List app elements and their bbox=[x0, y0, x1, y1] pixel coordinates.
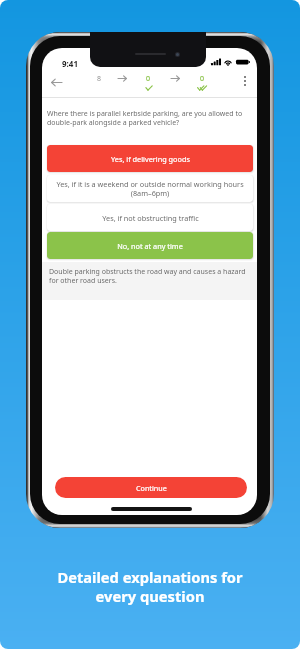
button[interactable]: Yes, if it is a weekend or outside norma… bbox=[47, 175, 253, 202]
staticText: Continue bbox=[136, 483, 167, 493]
staticText: 8 bbox=[97, 74, 102, 83]
button[interactable]: Back bbox=[47, 73, 65, 91]
staticText: Yes, if it is a weekend or outside norma… bbox=[56, 179, 244, 198]
staticText: No, not at any time bbox=[117, 241, 183, 251]
button[interactable]: Yes, if not obstructing traffic bbox=[47, 204, 253, 231]
staticText: Where there is parallel kerbside parking… bbox=[47, 109, 249, 127]
button[interactable]: No, not at any time bbox=[47, 232, 253, 259]
staticText: 0 bbox=[146, 74, 151, 83]
staticText: 9:41 bbox=[62, 58, 78, 69]
staticText: Yes, if delivering goods bbox=[111, 154, 190, 164]
staticText: Detailed explanations for every question bbox=[57, 567, 243, 606]
button[interactable]: More options bbox=[237, 73, 253, 89]
button[interactable]: Continue bbox=[55, 477, 247, 498]
button[interactable]: Yes, if delivering goods bbox=[47, 145, 253, 172]
staticText: Yes, if not obstructing traffic bbox=[102, 213, 199, 223]
staticText: 0 bbox=[200, 74, 205, 83]
staticText: Double parking obstructs the road way an… bbox=[49, 267, 255, 285]
